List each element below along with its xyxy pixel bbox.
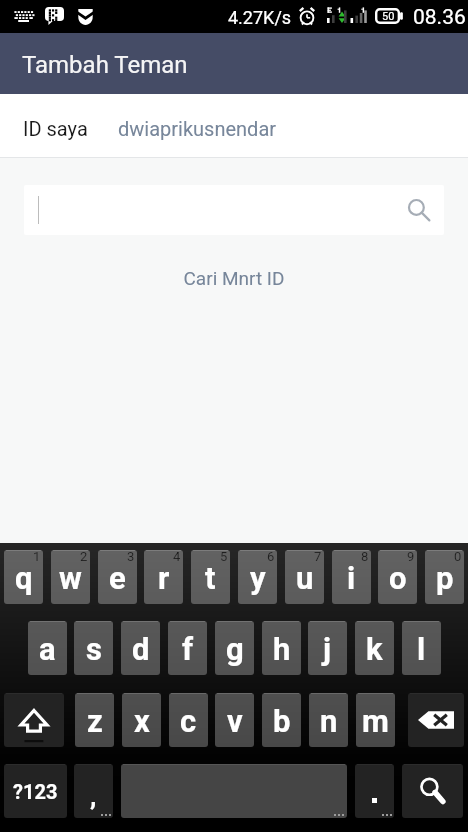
staticText: Tambah Teman <box>22 51 188 79</box>
button[interactable]: Backspace <box>408 693 464 747</box>
staticText: 2 <box>80 550 88 564</box>
button[interactable]: n <box>309 693 348 747</box>
button[interactable]: u <box>285 550 324 604</box>
staticText: x <box>134 703 150 739</box>
staticText: r <box>158 560 170 596</box>
button[interactable]: Search <box>402 764 463 818</box>
button[interactable]: Tambah Teman <box>0 33 468 94</box>
button[interactable]: o <box>378 550 417 604</box>
button[interactable]: Search <box>24 185 444 235</box>
staticText: d <box>132 631 150 667</box>
staticText: 4.27K/s <box>228 7 292 28</box>
button[interactable]: c <box>169 693 208 747</box>
button[interactable]: i <box>332 550 371 604</box>
staticText: dwiaprikusnendar <box>118 117 277 140</box>
staticText: h <box>273 631 291 667</box>
staticText: l <box>417 631 426 667</box>
staticText: n <box>320 703 338 739</box>
other: Search <box>406 197 432 223</box>
button[interactable]: q <box>4 550 43 604</box>
staticText: b <box>273 703 291 739</box>
staticText: 08.36 <box>413 5 466 30</box>
staticText: e <box>109 560 126 596</box>
button[interactable]: t <box>191 550 230 604</box>
staticText: , <box>90 781 97 811</box>
staticText: y <box>250 560 266 596</box>
staticText: u <box>296 560 314 596</box>
button[interactable]: Shift <box>4 693 64 747</box>
button[interactable]: y <box>238 550 277 604</box>
staticText: 8 <box>361 550 369 564</box>
button[interactable]: f <box>168 621 207 675</box>
staticText: 1 <box>33 550 41 564</box>
button[interactable]: z <box>75 693 114 747</box>
staticText: 7 <box>314 550 322 564</box>
staticText: 50 <box>382 10 395 23</box>
button[interactable]: ID saya <box>7 94 104 158</box>
button[interactable]: a <box>28 621 67 675</box>
staticText: 0 <box>454 550 462 564</box>
staticText: i <box>347 560 356 596</box>
button[interactable]: e <box>98 550 137 604</box>
staticText: j <box>323 631 332 667</box>
staticText: f <box>182 631 194 667</box>
staticText: z <box>87 703 103 739</box>
button[interactable]: , <box>74 764 113 818</box>
other: Shift <box>16 707 52 743</box>
staticText: a <box>39 631 56 667</box>
button[interactable] <box>355 764 394 818</box>
staticText: Cari Mnrt ID <box>0 267 468 289</box>
staticText: s <box>86 631 102 667</box>
button[interactable]: g <box>215 621 254 675</box>
staticText: 9 <box>407 550 415 564</box>
button[interactable]: w <box>51 550 90 604</box>
button[interactable]: d <box>121 621 160 675</box>
other: Search <box>418 776 448 806</box>
button[interactable]: m <box>356 693 395 747</box>
staticText: k <box>366 631 383 667</box>
staticText: ?123 <box>13 780 58 803</box>
button[interactable]: ?123 <box>4 764 67 818</box>
button[interactable] <box>121 764 347 818</box>
staticText: 6 <box>267 550 275 564</box>
staticText: o <box>389 560 407 596</box>
button[interactable]: dwiaprikusnendar <box>106 94 289 158</box>
button[interactable]: b <box>262 693 301 747</box>
staticText: c <box>180 703 197 739</box>
button[interactable]: r <box>144 550 183 604</box>
button[interactable]: k <box>355 621 394 675</box>
staticText: q <box>15 560 33 596</box>
staticText: 4 <box>173 550 181 564</box>
staticText: w <box>59 560 82 596</box>
button[interactable]: j <box>308 621 347 675</box>
button[interactable]: v <box>215 693 254 747</box>
staticText: g <box>226 631 244 667</box>
button[interactable]: h <box>262 621 301 675</box>
staticText: v <box>227 703 243 739</box>
staticText: ID saya <box>23 117 88 140</box>
other: Backspace <box>418 710 454 730</box>
staticText: t <box>205 560 216 596</box>
staticText: 5 <box>220 550 228 564</box>
staticText: 3 <box>127 550 135 564</box>
button[interactable]: x <box>122 693 161 747</box>
button[interactable]: p <box>425 550 464 604</box>
staticText: m <box>362 703 389 739</box>
staticText: p <box>436 560 454 596</box>
button[interactable]: s <box>74 621 113 675</box>
button[interactable]: l <box>402 621 441 675</box>
